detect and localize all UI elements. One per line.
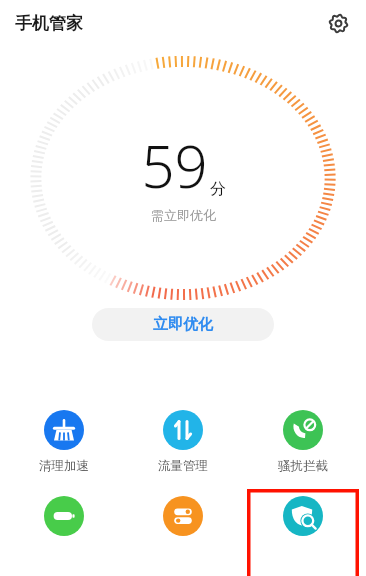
staticText: 流量管理 [158, 458, 208, 474]
staticText: 清理加速 [39, 458, 89, 474]
staticText: 需立即优化 [151, 207, 216, 223]
button[interactable]: Settings [320, 5, 356, 41]
button[interactable]: 骚扰拦截 [251, 403, 355, 477]
button[interactable]: Shortcut [12, 489, 116, 539]
staticText: 手机管家 [15, 13, 83, 34]
button[interactable]: Shortcut [131, 489, 235, 539]
button[interactable]: 立即优化 [92, 308, 274, 341]
staticText: 立即优化 [153, 315, 213, 334]
staticText: 分 [210, 179, 226, 199]
staticText: 骚扰拦截 [278, 458, 328, 474]
button[interactable]: Shortcut [251, 489, 355, 539]
staticText: 59 [141, 126, 208, 205]
button[interactable]: 清理加速 [12, 403, 116, 477]
button[interactable]: 流量管理 [131, 403, 235, 477]
